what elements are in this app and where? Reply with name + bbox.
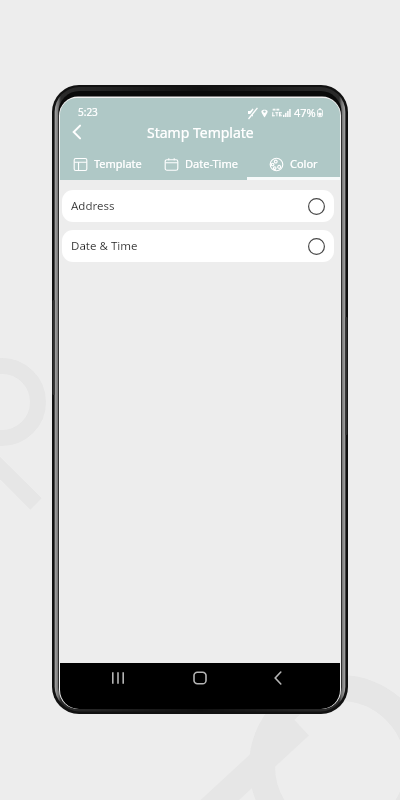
staticText: 47% [294,105,316,120]
staticText: Template [94,156,142,171]
button[interactable]: Home [192,670,208,686]
staticText: 5:23 [78,105,98,119]
button[interactable]: Date-Time [154,146,247,178]
staticText: Date & Time [71,238,138,254]
staticText: Color [290,156,318,171]
staticText: Date-Time [185,156,238,171]
staticText: Address [71,198,115,214]
button[interactable]: Back [270,670,286,686]
button[interactable]: Address [62,190,334,222]
button[interactable]: Back [66,121,88,143]
button[interactable]: Recents [110,670,126,686]
button[interactable]: Color [247,146,340,178]
button[interactable]: Date & Time [62,230,334,262]
staticText: Stamp Template [147,123,254,142]
button[interactable]: Template [60,146,154,178]
